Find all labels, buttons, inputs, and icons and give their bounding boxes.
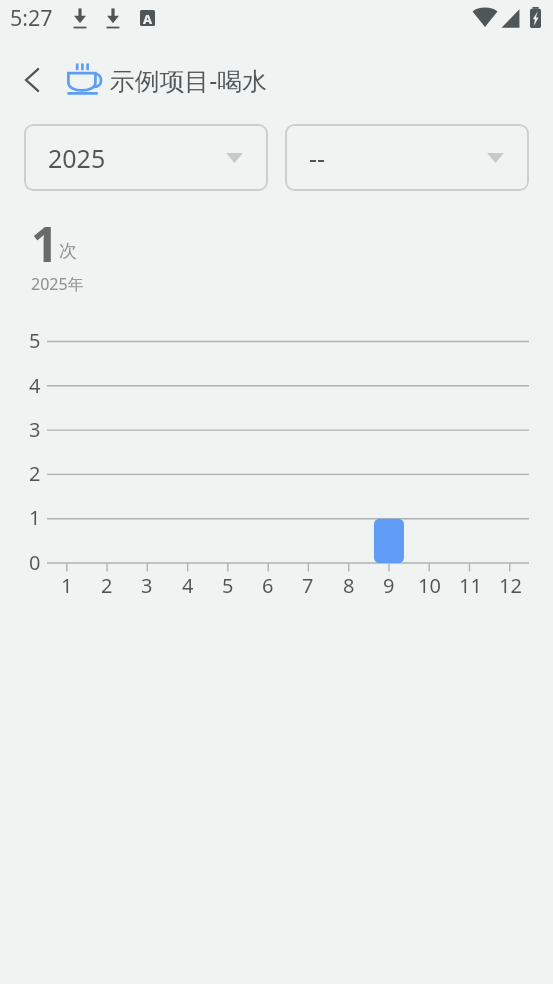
button[interactable]: 示例项目-喝水 xyxy=(62,57,272,101)
staticText: 9 xyxy=(383,572,395,594)
staticText: 3 xyxy=(141,572,153,594)
staticText: 2 xyxy=(101,572,113,594)
button[interactable]: -- xyxy=(285,124,529,191)
staticText: 次 xyxy=(59,240,77,263)
staticText: 6 xyxy=(262,572,274,594)
staticText: 2025年 xyxy=(31,273,84,295)
button[interactable]: 2025 xyxy=(24,124,268,191)
staticText: 7 xyxy=(302,572,314,594)
button[interactable]: Back xyxy=(10,58,54,102)
staticText: A xyxy=(143,10,152,26)
staticText: 0 xyxy=(29,549,41,571)
staticText: 5 xyxy=(29,327,41,349)
staticText: 12 xyxy=(499,572,522,594)
staticText: 1 xyxy=(31,211,59,276)
staticText: 5:27 xyxy=(10,3,53,32)
staticText: 2 xyxy=(29,460,41,482)
staticText: 2025 xyxy=(48,141,106,175)
staticText: 3 xyxy=(29,416,41,438)
staticText: 1 xyxy=(61,572,73,594)
staticText: 4 xyxy=(29,372,41,394)
staticText: 10 xyxy=(418,572,441,594)
staticText: 11 xyxy=(459,572,482,594)
staticText: -- xyxy=(309,141,326,175)
staticText: 4 xyxy=(182,572,194,594)
staticText: 示例项目-喝水 xyxy=(110,63,267,97)
staticText: 5 xyxy=(222,572,234,594)
staticText: 1 xyxy=(29,504,41,526)
staticText: 8 xyxy=(343,572,355,594)
button[interactable]: September: 1 time xyxy=(374,519,404,563)
